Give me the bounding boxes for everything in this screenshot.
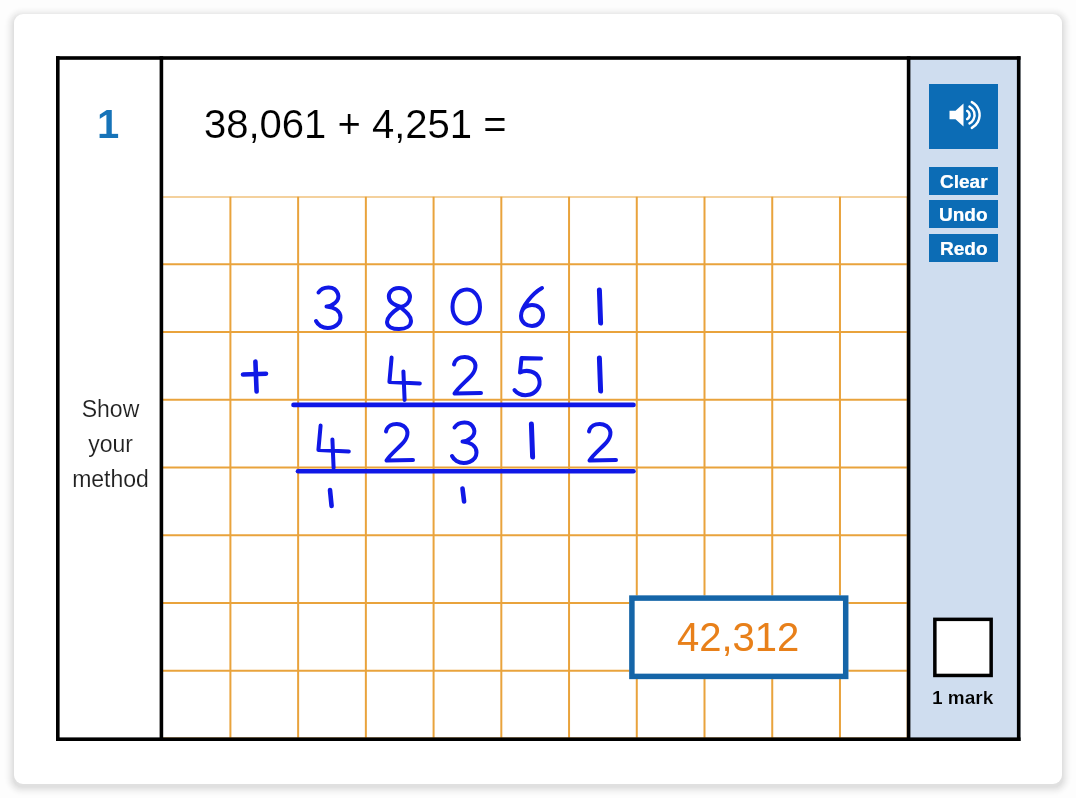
staticText: 1 — [97, 102, 120, 147]
staticText: 42,312 — [677, 615, 800, 660]
staticText: 1 mark — [932, 687, 994, 708]
staticText: Show your method — [72, 396, 149, 492]
button[interactable]: Play audio — [929, 84, 998, 149]
staticText: 38,061 + 4,251 = — [204, 102, 507, 147]
staticText: Clear — [940, 171, 988, 192]
staticText: Undo — [939, 204, 988, 225]
button[interactable]: Undo — [929, 200, 998, 228]
button[interactable]: Working area — [163, 198, 906, 737]
button[interactable]: Answer — [629, 595, 848, 679]
button[interactable]: Redo — [929, 234, 998, 262]
staticText: Redo — [940, 238, 988, 259]
button[interactable]: Clear — [929, 167, 998, 195]
